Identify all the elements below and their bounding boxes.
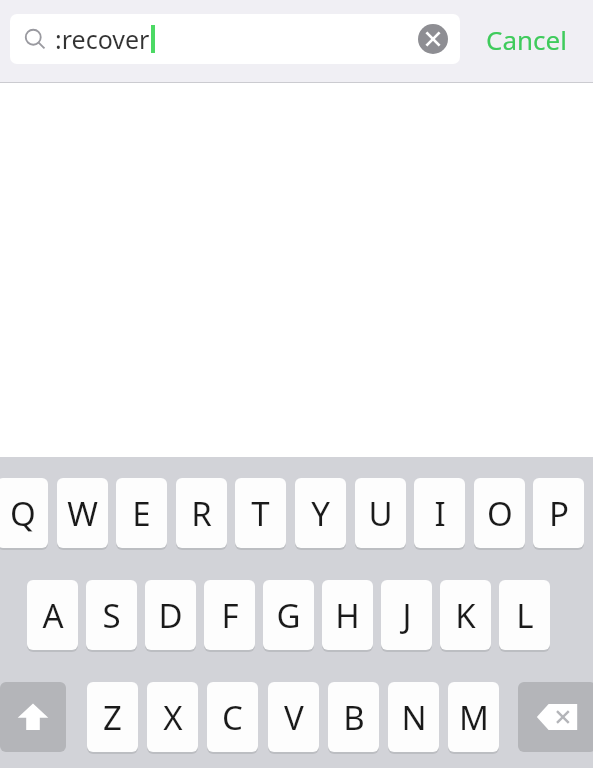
button[interactable]: Z	[87, 682, 138, 752]
staticText: S	[102, 593, 121, 638]
staticText: L	[516, 593, 534, 638]
button[interactable]: Shift	[0, 682, 66, 752]
staticText: Y	[311, 491, 330, 536]
button[interactable]: Clear text	[416, 22, 450, 56]
staticText: X	[163, 695, 183, 740]
staticText: F	[221, 593, 239, 638]
button[interactable]: Y	[295, 478, 346, 548]
button[interactable]: I	[414, 478, 465, 548]
button[interactable]: R	[176, 478, 227, 548]
button[interactable]: Cancel	[460, 14, 593, 64]
button[interactable]: F	[204, 580, 255, 650]
staticText: J	[402, 593, 412, 638]
staticText: R	[191, 491, 212, 536]
staticText: V	[284, 695, 304, 740]
staticText: I	[434, 491, 446, 536]
staticText: E	[132, 491, 151, 536]
staticText: C	[222, 695, 243, 740]
button[interactable]: L	[499, 580, 550, 650]
button[interactable]: B	[328, 682, 379, 752]
button[interactable]: T	[235, 478, 286, 548]
staticText: B	[343, 695, 365, 740]
staticText: M	[459, 695, 489, 740]
button[interactable]: J	[381, 580, 432, 650]
staticText: O	[487, 491, 513, 536]
button[interactable]: A	[27, 580, 78, 650]
button[interactable]: M	[448, 682, 499, 752]
button[interactable]: G	[263, 580, 314, 650]
staticText: W	[67, 491, 98, 536]
staticText: T	[251, 491, 270, 536]
staticText: Cancel	[486, 22, 567, 57]
button[interactable]: C	[207, 682, 258, 752]
button[interactable]: D	[145, 580, 196, 650]
button[interactable]: Backspace	[518, 682, 593, 752]
staticText: H	[335, 593, 360, 638]
button[interactable]: W	[57, 478, 108, 548]
button[interactable]: X	[147, 682, 198, 752]
staticText: G	[276, 593, 301, 638]
staticText: P	[549, 491, 569, 536]
button[interactable]: H	[322, 580, 373, 650]
button[interactable]: S	[86, 580, 137, 650]
button[interactable]: Q	[0, 478, 48, 548]
staticText: Q	[10, 491, 36, 536]
button[interactable]: U	[355, 478, 406, 548]
staticText: Z	[103, 695, 122, 740]
button[interactable]: O	[474, 478, 525, 548]
staticText: N	[401, 695, 427, 740]
staticText: K	[455, 593, 476, 638]
button[interactable]: E	[116, 478, 167, 548]
staticText: A	[42, 593, 64, 638]
staticText: :recover	[55, 22, 150, 56]
button[interactable]: V	[268, 682, 319, 752]
button[interactable]: P	[533, 478, 584, 548]
button[interactable]: N	[388, 682, 439, 752]
button[interactable]: K	[440, 580, 491, 650]
staticText: D	[158, 593, 183, 638]
button[interactable]: :recover	[10, 14, 460, 64]
staticText: U	[368, 491, 393, 536]
